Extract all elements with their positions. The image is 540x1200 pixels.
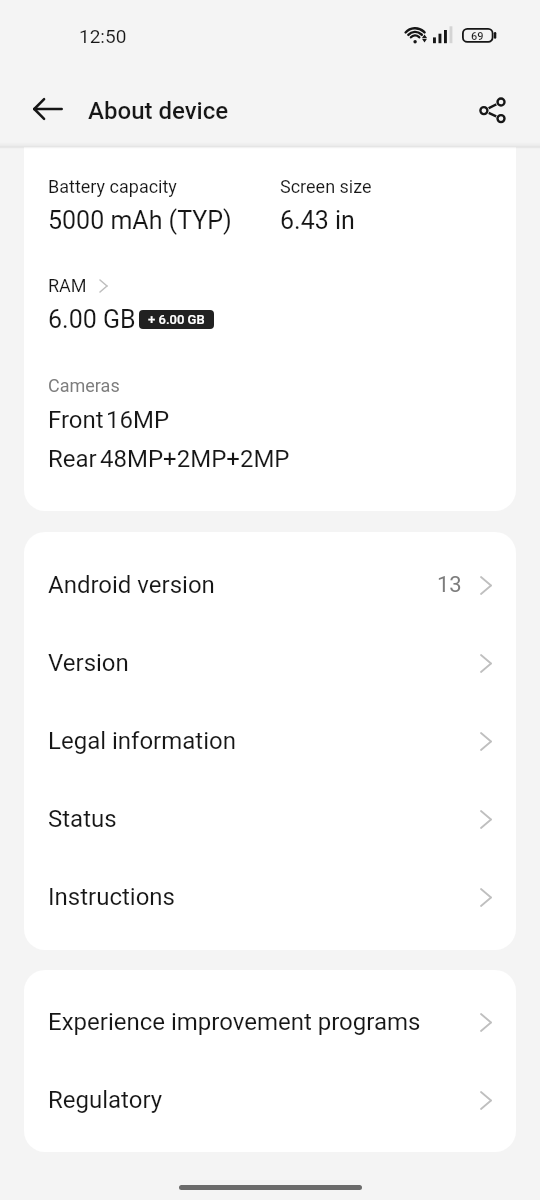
button[interactable]: RAM	[48, 275, 108, 296]
staticText: Android version	[48, 571, 215, 599]
button[interactable]: Instructions	[24, 858, 516, 936]
staticText: 6.43 in	[280, 206, 355, 235]
other: Wi-Fi	[403, 24, 429, 46]
staticText: Regulatory	[48, 1086, 163, 1114]
button[interactable]: Regulatory	[24, 1061, 516, 1139]
other: Mobile signal	[433, 26, 453, 44]
staticText: 16MP	[106, 406, 170, 434]
staticText: 6.00 GB	[48, 305, 136, 334]
button[interactable]: Status	[24, 780, 516, 858]
button[interactable]: Version	[24, 624, 516, 702]
staticText: Status	[48, 805, 117, 833]
staticText: 12:50	[79, 25, 127, 47]
staticText: Legal information	[48, 727, 236, 755]
staticText: 48MP+2MP+2MP	[100, 445, 290, 473]
button[interactable]: Experience improvement programs	[24, 983, 516, 1061]
other: Battery 69 percent	[462, 28, 497, 44]
staticText: Instructions	[48, 883, 175, 911]
button[interactable]: Back	[22, 83, 74, 135]
staticText: About device	[88, 97, 229, 125]
staticText: Rear	[48, 445, 97, 473]
staticText: 13	[437, 572, 462, 598]
staticText: Cameras	[48, 375, 120, 396]
button[interactable]: Legal information	[24, 702, 516, 780]
staticText: Battery capacity	[48, 176, 177, 197]
staticText: Version	[48, 649, 129, 677]
button[interactable]: Android version	[24, 546, 516, 624]
staticText: 69	[471, 30, 484, 43]
staticText: Experience improvement programs	[48, 1008, 421, 1036]
staticText: 5000 mAh (TYP)	[48, 206, 232, 235]
staticText: Screen size	[280, 176, 372, 197]
staticText: RAM	[48, 275, 87, 296]
button[interactable]: Share	[466, 84, 518, 136]
staticText: + 6.00 GB	[148, 312, 205, 327]
staticText: Front	[48, 406, 104, 434]
